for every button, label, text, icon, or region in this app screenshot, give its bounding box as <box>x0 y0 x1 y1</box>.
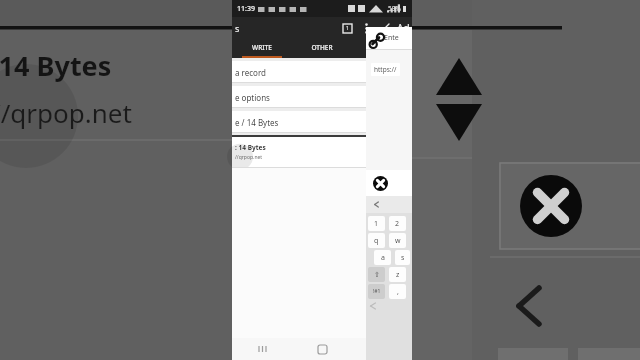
staticText: //qrpop.net <box>235 154 263 161</box>
staticText: s <box>401 253 405 263</box>
staticText: , <box>397 287 399 297</box>
other: Previous <box>373 201 380 208</box>
staticText: Ente <box>384 33 399 43</box>
staticText: TASKS <box>373 43 392 52</box>
staticText: w <box>395 236 401 246</box>
staticText: OTHER <box>311 43 333 52</box>
button[interactable]: s <box>395 250 410 265</box>
button[interactable]: e / 14 Bytes <box>232 111 412 133</box>
staticText: !#1 <box>373 288 381 295</box>
button[interactable]: !#1 <box>368 284 385 299</box>
staticText: https:// <box>374 65 397 74</box>
button[interactable]: 2 <box>389 216 406 231</box>
button[interactable]: , <box>389 284 406 299</box>
staticText: 2 <box>395 219 400 229</box>
staticText: q <box>374 236 379 246</box>
button[interactable]: a record <box>232 61 412 83</box>
staticText: z <box>396 270 400 280</box>
button[interactable]: ⇧ <box>368 267 385 282</box>
button[interactable]: : 14 Bytes <box>232 137 412 167</box>
button[interactable]: TASKS <box>352 39 412 56</box>
button[interactable]: Link <box>366 27 412 49</box>
button[interactable]: z <box>389 267 406 282</box>
staticText: e options <box>235 92 270 103</box>
staticText: a record <box>235 67 266 78</box>
button[interactable]: WRITE <box>232 39 292 56</box>
staticText: : 14 Bytes <box>0 47 112 84</box>
staticText: 1 <box>346 25 349 32</box>
button[interactable]: e options <box>232 86 412 108</box>
button[interactable]: Recents <box>232 338 292 360</box>
staticText: 59% <box>388 4 401 13</box>
staticText: Ad <box>397 21 410 35</box>
button[interactable]: OTHER <box>292 39 352 56</box>
staticText: e / 14 Bytes <box>235 117 279 128</box>
staticText: : 14 Bytes <box>235 143 266 152</box>
staticText: s <box>235 22 240 34</box>
button[interactable]: Record count <box>339 20 355 36</box>
button[interactable]: Home <box>292 338 352 360</box>
button[interactable]: w <box>389 233 406 248</box>
button[interactable]: a <box>374 250 391 265</box>
button[interactable]: Back <box>352 338 412 360</box>
staticText: ⇧ <box>374 271 380 279</box>
staticText: 11:39 <box>237 4 255 14</box>
button[interactable]: More options <box>358 20 374 36</box>
staticText: WRITE <box>252 43 272 52</box>
button[interactable]: 1 <box>368 216 385 231</box>
staticText: a <box>381 253 385 263</box>
button[interactable]: Clear <box>373 176 388 191</box>
button[interactable]: Back <box>379 19 397 37</box>
other: Link <box>369 32 382 45</box>
button[interactable]: https:// <box>374 65 397 74</box>
staticText: ://qrpop.net <box>0 95 132 130</box>
button[interactable]: q <box>368 233 385 248</box>
staticText: 1 <box>374 219 379 229</box>
